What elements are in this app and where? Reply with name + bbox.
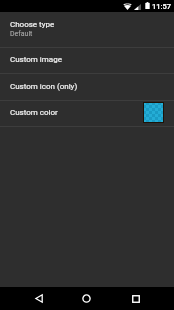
other: Wi-Fi [123,3,132,10]
button[interactable]: Custom color [0,101,174,126]
staticText: 11:57 [152,2,172,11]
button[interactable]: Custom image [0,48,174,73]
staticText: Choose type [10,20,55,29]
button[interactable]: Choose type [0,20,174,47]
button[interactable]: Back [19,287,58,310]
button[interactable]: Recents [116,287,155,310]
staticText: Custom icon (only) [10,82,78,91]
button[interactable]: Home [67,287,106,310]
button[interactable]: Custom icon (only) [0,74,174,100]
staticText: Default [10,30,33,38]
staticText: Custom image [10,55,62,64]
other: Battery [145,2,150,9]
staticText: Custom color [10,108,143,117]
other: Mobile signal [134,4,141,10]
